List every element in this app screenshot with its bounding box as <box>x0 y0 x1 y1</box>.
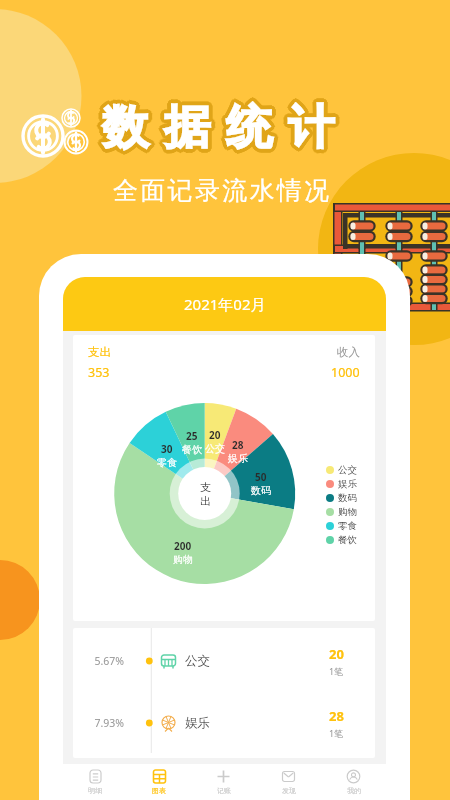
staticText: 收入 <box>337 345 360 359</box>
staticText: 餐饮 <box>338 534 357 546</box>
staticText: 20 <box>329 645 344 663</box>
staticText: 数据统计 <box>90 99 338 157</box>
staticText: 5.67% <box>73 654 124 668</box>
staticText: 明细 <box>88 786 102 795</box>
button[interactable]: 2021年02月 <box>63 277 386 331</box>
staticText: 数据统计 <box>91 99 339 157</box>
staticText: 数据统计 <box>94 101 342 159</box>
staticText: 购物 <box>338 506 357 518</box>
staticText: 数据统计 <box>91 97 339 155</box>
staticText: 数据统计 <box>96 101 344 159</box>
staticText: 数据统计 <box>95 101 343 159</box>
staticText: 数据统计 <box>96 96 344 154</box>
staticText: 数据统计 <box>92 98 340 156</box>
staticText: 数据统计 <box>93 101 341 159</box>
staticText: 购物 <box>173 553 193 566</box>
staticText: 零食 <box>157 456 177 469</box>
staticText: 数据统计 <box>94 99 342 157</box>
button[interactable]: 明细 <box>63 764 127 800</box>
staticText: 数据统计 <box>93 98 341 156</box>
button[interactable]: 发现 <box>256 764 321 800</box>
staticText: 支出 <box>88 345 111 359</box>
staticText: 数据统计 <box>94 103 342 161</box>
staticText: 公交 <box>185 653 210 669</box>
staticText: 数据统计 <box>93 99 341 157</box>
staticText: 数据统计 <box>95 97 343 155</box>
staticText: 353 <box>88 364 110 381</box>
staticText: 1笔 <box>329 665 344 677</box>
staticText: 数据统计 <box>92 96 340 154</box>
staticText: 25 <box>186 429 198 443</box>
staticText: 数据统计 <box>94 100 342 158</box>
button[interactable]: 7.93% <box>73 694 375 753</box>
staticText: 数据统计 <box>92 101 340 159</box>
staticText: 数据统计 <box>92 99 340 157</box>
staticText: 28 <box>232 438 244 452</box>
staticText: 数据统计 <box>94 98 342 156</box>
staticText: 200 <box>174 539 192 553</box>
staticText: 零食 <box>338 520 357 532</box>
staticText: 数据统计 <box>92 97 340 155</box>
staticText: 发现 <box>282 786 296 795</box>
staticText: 20 <box>209 428 221 442</box>
staticText: 数据统计 <box>98 99 346 157</box>
staticText: 数据统计 <box>94 95 342 153</box>
staticText: 公交 <box>205 442 225 455</box>
staticText: 数据统计 <box>96 102 344 160</box>
staticText: 数据统计 <box>91 98 339 156</box>
staticText: 娱乐 <box>338 478 357 490</box>
staticText: 全面记录流水情况 <box>113 175 332 206</box>
staticText: 图表 <box>152 786 166 795</box>
staticText: 数据统计 <box>95 102 343 160</box>
staticText: 公交 <box>338 464 357 476</box>
button[interactable]: 我的 <box>321 764 386 800</box>
staticText: 数据统计 <box>97 101 345 159</box>
staticText: 我的 <box>347 786 361 795</box>
staticText: 娱乐 <box>228 452 248 465</box>
other: 娱乐 <box>160 715 177 732</box>
staticText: 数据统计 <box>94 97 342 155</box>
staticText: 数据统计 <box>92 102 340 160</box>
staticText: 数据统计 <box>95 96 343 154</box>
staticText: 支 <box>200 480 211 494</box>
staticText: 50 <box>255 470 267 484</box>
button[interactable]: 5.67% <box>73 628 375 694</box>
staticText: 数据统计 <box>93 102 341 160</box>
staticText: 1笔 <box>329 727 344 739</box>
staticText: 数据统计 <box>95 99 343 157</box>
staticText: 餐饮 <box>182 443 202 456</box>
staticText: 数据统计 <box>92 100 340 158</box>
staticText: 数据统计 <box>96 99 344 157</box>
staticText: 2021年02月 <box>184 294 266 314</box>
staticText: 数据统计 <box>96 100 344 158</box>
button[interactable]: 图表 <box>127 764 191 800</box>
staticText: 30 <box>161 442 173 456</box>
staticText: 数据统计 <box>91 101 339 159</box>
button[interactable]: 记账 <box>191 764 256 800</box>
staticText: 数据统计 <box>94 96 342 154</box>
staticText: 娱乐 <box>185 715 210 731</box>
staticText: 记账 <box>217 786 231 795</box>
staticText: 数据统计 <box>96 97 344 155</box>
staticText: 数据统计 <box>96 98 344 156</box>
staticText: 数据统计 <box>93 96 341 154</box>
staticText: 数据统计 <box>95 98 343 156</box>
staticText: 数据统计 <box>95 100 343 158</box>
staticText: 28 <box>329 707 344 725</box>
staticText: 数据统计 <box>93 100 341 158</box>
staticText: 数据统计 <box>97 100 345 158</box>
staticText: 1000 <box>331 364 360 381</box>
staticText: 7.93% <box>73 716 124 730</box>
staticText: 数据统计 <box>97 99 345 157</box>
staticText: 数码 <box>251 484 271 497</box>
staticText: 数据统计 <box>93 97 341 155</box>
staticText: 数据统计 <box>97 97 345 155</box>
other: 公交 <box>160 653 177 670</box>
staticText: 数据统计 <box>94 102 342 160</box>
staticText: 数据统计 <box>97 98 345 156</box>
staticText: 数据统计 <box>91 100 339 158</box>
staticText: 数码 <box>338 492 357 504</box>
staticText: 出 <box>200 494 211 508</box>
